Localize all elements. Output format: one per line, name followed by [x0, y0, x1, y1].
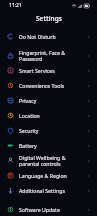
button[interactable]: Convenience Tools [0, 78, 97, 93]
staticText: Additional Settings [19, 187, 85, 194]
button[interactable]: Security [0, 123, 97, 138]
staticText: Convenience Tools [19, 82, 85, 89]
staticText: Digital Wellbeing & parental controls [19, 154, 85, 167]
staticText: 11:21 [9, 2, 22, 9]
button[interactable]: Battery [0, 138, 97, 153]
button[interactable]: Fingerprint, Face & Password [0, 48, 97, 63]
staticText: Location [19, 112, 85, 119]
button[interactable]: Additional Settings [0, 183, 97, 198]
button[interactable]: Privacy [0, 93, 97, 108]
button[interactable]: Location [0, 108, 97, 123]
staticText: Language & Region [19, 172, 85, 179]
button[interactable]: Digital Wellbeing & parental controls [0, 153, 97, 168]
staticText: Privacy [19, 97, 85, 104]
staticText: Fingerprint, Face & Password [19, 49, 85, 62]
staticText: Do Not Disturb [19, 33, 85, 40]
staticText: Settings [36, 14, 62, 23]
button[interactable]: Do Not Disturb [0, 29, 97, 44]
staticText: Smart Services [19, 67, 85, 74]
staticText: Software Update [19, 206, 85, 213]
button[interactable]: Smart Services [0, 63, 97, 78]
button[interactable]: Software Update [0, 203, 97, 216]
staticText: Security [19, 127, 85, 134]
button[interactable]: Language & Region [0, 168, 97, 183]
staticText: Battery [19, 142, 85, 149]
